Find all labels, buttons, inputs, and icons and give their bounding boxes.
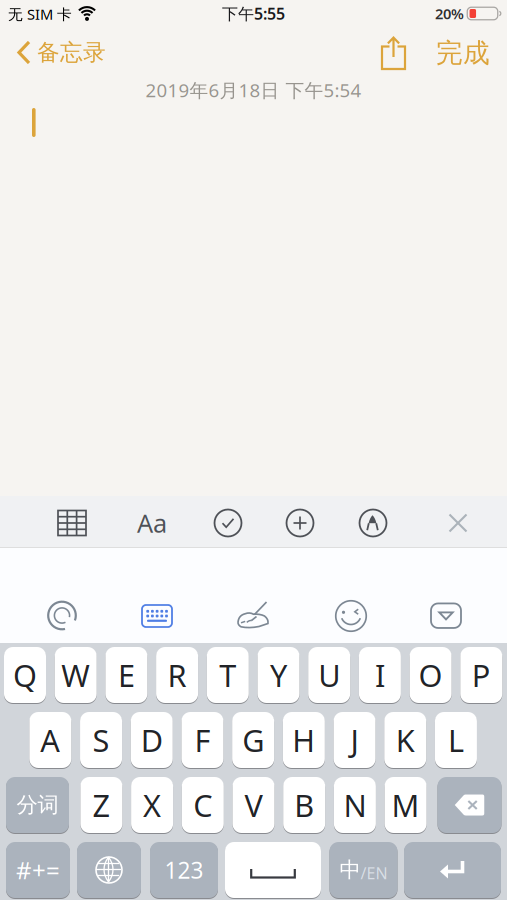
button[interactable]: O bbox=[410, 646, 452, 704]
button[interactable]: R bbox=[156, 646, 198, 704]
button[interactable]: J bbox=[334, 711, 376, 769]
button[interactable]: V bbox=[232, 776, 274, 834]
button[interactable]: 下一个输入法 bbox=[77, 841, 141, 899]
button[interactable]: P bbox=[460, 646, 502, 704]
button[interactable]: K bbox=[384, 711, 426, 769]
staticText: Q bbox=[13, 655, 37, 695]
button[interactable]: N bbox=[334, 776, 376, 834]
button[interactable]: Y bbox=[257, 646, 299, 704]
staticText: Z bbox=[92, 785, 110, 825]
button[interactable]: 分词 bbox=[6, 776, 69, 834]
staticText: 无 SIM 卡 bbox=[8, 4, 72, 24]
button[interactable]: A bbox=[29, 711, 71, 769]
staticText: K bbox=[396, 720, 415, 760]
button[interactable]: L bbox=[435, 711, 477, 769]
staticText: I bbox=[375, 655, 385, 695]
staticText: P bbox=[472, 655, 491, 695]
button[interactable]: #+= bbox=[6, 841, 70, 899]
button[interactable]: 插入 bbox=[286, 509, 314, 537]
staticText: S bbox=[93, 720, 110, 760]
staticText: H bbox=[292, 720, 315, 760]
staticText: 123 bbox=[164, 855, 203, 885]
button[interactable]: S bbox=[80, 711, 122, 769]
button[interactable]: 插入表格 bbox=[57, 509, 87, 536]
button[interactable]: 123 bbox=[150, 841, 218, 899]
staticText: 完成 bbox=[436, 37, 490, 69]
button[interactable]: B bbox=[283, 776, 325, 834]
button[interactable]: I bbox=[359, 646, 401, 704]
staticText: A bbox=[40, 720, 60, 760]
button[interactable]: M bbox=[385, 776, 427, 834]
staticText: /EN bbox=[360, 862, 387, 884]
button[interactable]: X bbox=[131, 776, 173, 834]
staticText: Y bbox=[270, 655, 287, 695]
staticText: X bbox=[143, 785, 161, 825]
button[interactable]: 标记 bbox=[359, 509, 387, 537]
button[interactable]: 输入法 bbox=[45, 598, 79, 632]
button[interactable]: 完成 bbox=[432, 36, 494, 70]
button[interactable]: H bbox=[283, 711, 325, 769]
button[interactable]: 格式 bbox=[132, 507, 172, 539]
staticText: N bbox=[343, 785, 366, 825]
button[interactable]: E bbox=[105, 646, 147, 704]
button[interactable]: D bbox=[131, 711, 173, 769]
staticText: Aa bbox=[137, 506, 167, 540]
button[interactable]: F bbox=[181, 711, 223, 769]
staticText: 2019年6月18日 下午5:54 bbox=[145, 78, 361, 102]
button[interactable]: G bbox=[232, 711, 274, 769]
staticText: 20% bbox=[435, 4, 464, 23]
staticText: 分词 bbox=[16, 792, 58, 818]
button[interactable]: 手写 bbox=[232, 599, 272, 633]
button[interactable]: C bbox=[182, 776, 224, 834]
button[interactable]: Q bbox=[4, 646, 46, 704]
button[interactable]: 备忘录 bbox=[15, 35, 107, 69]
staticText: T bbox=[219, 655, 236, 695]
staticText: U bbox=[318, 655, 340, 695]
staticText: R bbox=[168, 655, 187, 695]
button[interactable]: U bbox=[308, 646, 350, 704]
button[interactable]: 切换中英文 bbox=[329, 841, 397, 899]
button[interactable]: 收起键盘 bbox=[428, 601, 464, 630]
button[interactable]: 换行 bbox=[404, 841, 501, 899]
button[interactable]: 核对清单 bbox=[214, 509, 242, 537]
staticText: M bbox=[392, 785, 420, 825]
staticText: E bbox=[118, 655, 135, 695]
staticText: L bbox=[448, 720, 464, 760]
staticText: D bbox=[141, 720, 163, 760]
staticText: F bbox=[194, 720, 210, 760]
button[interactable]: 表情 bbox=[334, 599, 368, 633]
staticText: B bbox=[294, 785, 314, 825]
staticText: V bbox=[244, 785, 262, 825]
button[interactable]: 空格 bbox=[225, 841, 321, 899]
staticText: 备忘录 bbox=[37, 39, 106, 66]
staticText: 中 bbox=[339, 857, 360, 883]
staticText: 下午5:55 bbox=[222, 3, 285, 24]
button[interactable]: W bbox=[55, 646, 97, 704]
button[interactable]: T bbox=[207, 646, 249, 704]
staticText: W bbox=[61, 655, 90, 695]
button[interactable]: 共享 bbox=[379, 36, 407, 69]
button[interactable]: Z bbox=[80, 776, 122, 834]
staticText: J bbox=[351, 720, 359, 760]
staticText: #+= bbox=[16, 854, 60, 886]
button[interactable]: 键盘 bbox=[139, 601, 175, 631]
staticText: G bbox=[242, 720, 264, 760]
button[interactable]: 关闭 bbox=[448, 513, 468, 533]
staticText: O bbox=[419, 655, 443, 695]
staticText: C bbox=[193, 785, 212, 825]
button[interactable]: 删除 bbox=[437, 776, 501, 834]
